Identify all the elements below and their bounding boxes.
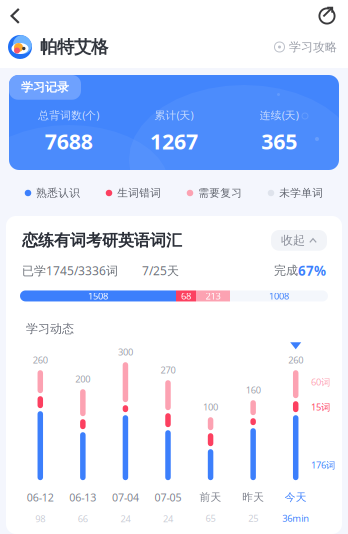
- button[interactable]: 收起: [271, 230, 327, 251]
- staticText: 07-05: [154, 490, 181, 504]
- staticText: 24: [120, 512, 130, 525]
- button[interactable]: Back: [0, 6, 32, 25]
- staticText: 需要复习: [198, 186, 242, 199]
- button[interactable]: Share: [306, 6, 348, 26]
- staticText: 1267: [150, 127, 198, 155]
- staticText: 1508: [88, 290, 108, 302]
- staticText: 66: [78, 512, 88, 525]
- staticText: 前天: [200, 491, 222, 504]
- staticText: 连续(天): [260, 108, 299, 122]
- staticText: 65: [206, 512, 216, 524]
- staticText: 67%: [298, 262, 326, 279]
- staticText: 365: [261, 127, 297, 155]
- staticText: 总背词数(个): [38, 108, 99, 122]
- staticText: 昨天: [242, 491, 264, 504]
- staticText: 07-04: [112, 490, 139, 504]
- staticText: 98: [35, 512, 45, 525]
- staticText: 176词: [311, 459, 335, 471]
- staticText: 60词: [311, 376, 330, 388]
- staticText: 25: [248, 512, 258, 524]
- staticText: 学习攻略: [289, 40, 337, 54]
- staticText: 学习动态: [26, 321, 74, 336]
- staticText: 270: [160, 364, 175, 376]
- staticText: 06-12: [27, 490, 54, 504]
- staticText: 15词: [311, 401, 330, 413]
- staticText: 160: [246, 384, 261, 396]
- staticText: 7688: [45, 127, 93, 155]
- staticText: 06-13: [69, 490, 96, 504]
- staticText: 300: [118, 346, 133, 358]
- staticText: 36min: [282, 512, 309, 524]
- staticText: 收起: [281, 233, 305, 248]
- staticText: 未学单词: [279, 186, 323, 199]
- staticText: 累计(天): [154, 108, 193, 122]
- staticText: 260: [288, 354, 303, 366]
- staticText: 完成: [274, 263, 298, 278]
- staticText: 7/25天: [142, 263, 179, 278]
- staticText: 今天: [285, 491, 307, 504]
- staticText: 213: [205, 290, 220, 302]
- staticText: 恋练有词考研英语词汇: [22, 230, 182, 250]
- staticText: 帕特艾格: [40, 36, 108, 58]
- button[interactable]: 学习攻略: [274, 36, 348, 58]
- staticText: 学习记录: [21, 80, 69, 95]
- staticText: 熟悉认识: [36, 186, 80, 199]
- staticText: 24: [163, 512, 173, 525]
- staticText: 68: [181, 290, 191, 302]
- staticText: 已学1745/3336词: [22, 263, 118, 278]
- staticText: 200: [75, 373, 90, 385]
- staticText: 1008: [269, 290, 289, 302]
- staticText: 100: [203, 401, 218, 413]
- staticText: 生词错词: [117, 186, 161, 199]
- staticText: 260: [33, 354, 48, 366]
